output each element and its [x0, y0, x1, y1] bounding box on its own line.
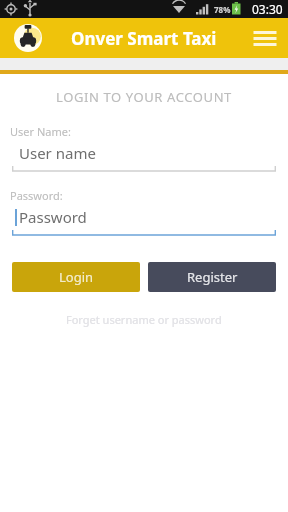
button[interactable]: Login: [12, 262, 140, 292]
staticText: 78%: [214, 4, 231, 15]
button[interactable]: User name field: [12, 143, 276, 172]
staticText: Onver Smart Taxi: [71, 27, 217, 50]
button[interactable]: Password field: [12, 207, 276, 236]
button[interactable]: Register: [148, 262, 276, 292]
button[interactable]: Forget username or password: [0, 312, 288, 327]
staticText: Register: [187, 268, 238, 286]
staticText: LOGIN TO YOUR ACCOUNT: [0, 88, 288, 106]
staticText: Login: [59, 268, 94, 286]
staticText: User Name:: [10, 124, 71, 139]
staticText: Password: [19, 207, 87, 227]
staticText: 03:30: [252, 1, 283, 17]
staticText: Forget username or password: [66, 312, 222, 327]
staticText: Password:: [10, 188, 63, 203]
staticText: User name: [19, 143, 96, 163]
button[interactable]: Open navigation menu: [248, 21, 282, 55]
